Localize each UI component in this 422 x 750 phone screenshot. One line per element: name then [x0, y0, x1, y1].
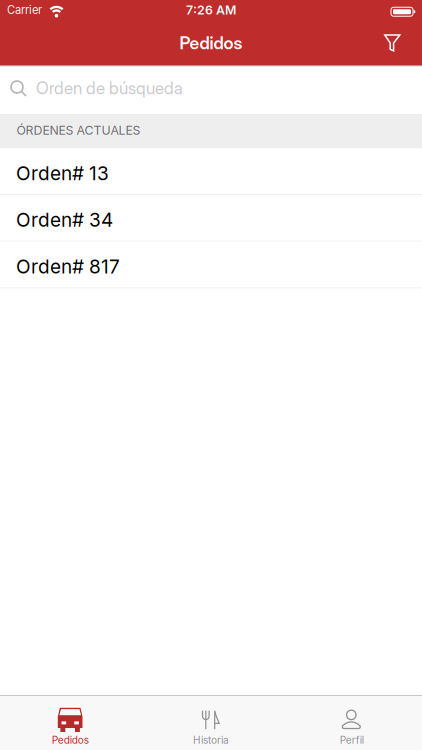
button[interactable]: Perfil [281, 696, 422, 750]
staticText: ÓRDENES ACTUALES [16, 123, 140, 138]
staticText: Orden# 13 [16, 162, 109, 185]
button[interactable]: Orden de búsqueda [0, 64, 422, 114]
staticText: Carrier [7, 3, 42, 17]
button[interactable]: Filtrar [384, 34, 422, 51]
staticText: Orden# 817 [16, 255, 120, 278]
staticText: Pedidos [179, 32, 242, 54]
staticText: Perfil [340, 734, 364, 746]
staticText: Pedidos [52, 734, 89, 746]
staticText: Historia [193, 734, 229, 746]
button[interactable]: Orden# 13 [0, 148, 422, 195]
button[interactable]: Historia [141, 696, 281, 750]
staticText: 7:26 AM [186, 3, 236, 17]
button[interactable]: Orden# 34 [0, 195, 422, 242]
staticText: Orden# 34 [16, 208, 113, 231]
button[interactable]: Orden# 817 [0, 242, 422, 288]
staticText: Orden de búsqueda [36, 78, 183, 98]
button[interactable]: Pedidos [0, 696, 141, 750]
